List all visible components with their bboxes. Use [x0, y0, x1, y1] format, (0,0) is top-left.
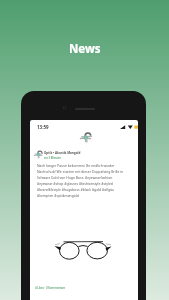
- button[interactable]: 4 Likes · 0 Kommentare: [35, 286, 66, 290]
- staticText: vor 3 Minuten: [44, 156, 62, 160]
- staticText: Nach langer Pause bekommst Ihr endlich w…: [37, 163, 128, 198]
- button[interactable]: News: [69, 41, 101, 57]
- staticText: 13:59: [37, 124, 49, 130]
- button[interactable]: Optik • Akustik Mangold: [44, 151, 81, 155]
